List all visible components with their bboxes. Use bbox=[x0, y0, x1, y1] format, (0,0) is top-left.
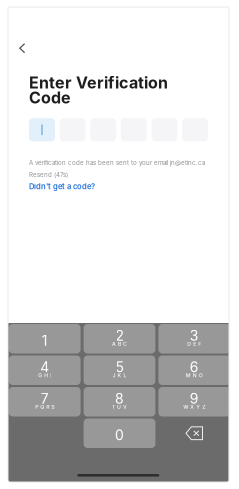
staticText: A B C bbox=[112, 341, 127, 347]
staticText: Code bbox=[29, 88, 71, 107]
button[interactable]: 7 bbox=[9, 387, 81, 416]
button[interactable]: 0 bbox=[84, 418, 155, 448]
staticText: 4 bbox=[40, 359, 49, 376]
staticText: 1 bbox=[42, 332, 48, 349]
button[interactable]: 5 bbox=[84, 355, 155, 385]
staticText: 6 bbox=[190, 359, 199, 376]
staticText: 3 bbox=[190, 327, 199, 344]
staticText: W X Y Z bbox=[183, 404, 205, 410]
button[interactable]: 9 bbox=[158, 387, 230, 416]
staticText: 9 bbox=[190, 390, 199, 407]
staticText: Resend (47s) bbox=[29, 171, 68, 178]
button[interactable]: 2 bbox=[84, 324, 155, 353]
staticText: P Q R S bbox=[35, 404, 54, 410]
staticText: Didn't get a code? bbox=[29, 182, 95, 191]
button[interactable]: 3 bbox=[158, 324, 230, 353]
button[interactable]: Didn't get a code? bbox=[29, 180, 95, 192]
staticText: A verification code has been sent to you… bbox=[29, 159, 205, 166]
staticText: M N O bbox=[186, 372, 203, 378]
staticText: T U V bbox=[112, 404, 127, 410]
staticText: 2 bbox=[115, 327, 123, 344]
button[interactable]: 1 bbox=[9, 324, 81, 353]
staticText: 0 bbox=[115, 427, 124, 443]
button[interactable]: Back bbox=[9, 35, 35, 61]
button[interactable]: 8 bbox=[84, 387, 155, 416]
staticText: D E F bbox=[187, 341, 201, 347]
staticText: J K L bbox=[112, 372, 126, 378]
staticText: 8 bbox=[115, 390, 124, 407]
staticText: Enter Verification bbox=[29, 73, 168, 92]
button[interactable]: 4 bbox=[9, 355, 81, 385]
staticText: G H I bbox=[38, 372, 51, 378]
staticText: 5 bbox=[115, 359, 123, 376]
button[interactable]: Delete bbox=[158, 418, 230, 448]
staticText: 7 bbox=[41, 390, 49, 407]
button[interactable]: 6 bbox=[158, 355, 230, 385]
